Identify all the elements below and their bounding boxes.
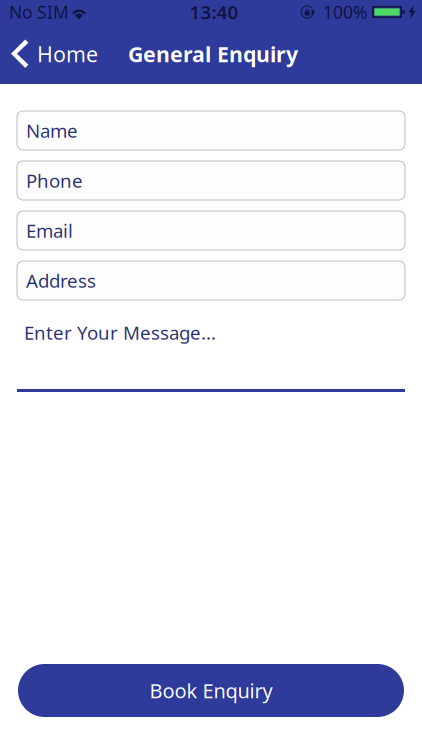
- button[interactable]: Phone: [17, 161, 405, 200]
- staticText: 13:40: [189, 0, 238, 24]
- staticText: 100%: [323, 0, 367, 23]
- staticText: Book Enquiry: [149, 677, 272, 704]
- button[interactable]: Name: [17, 111, 405, 150]
- button[interactable]: Email: [17, 211, 405, 250]
- staticText: No SIM: [9, 0, 69, 23]
- staticText: Name: [26, 118, 78, 143]
- staticText: Address: [26, 268, 96, 293]
- button[interactable]: Home: [0, 24, 106, 84]
- staticText: Enter Your Message...: [24, 320, 216, 345]
- staticText: Phone: [26, 168, 83, 193]
- staticText: Home: [37, 40, 98, 68]
- button[interactable]: Book Enquiry: [18, 664, 404, 717]
- button[interactable]: Address: [17, 261, 405, 300]
- staticText: General Enquiry: [128, 40, 298, 68]
- staticText: Email: [26, 218, 73, 243]
